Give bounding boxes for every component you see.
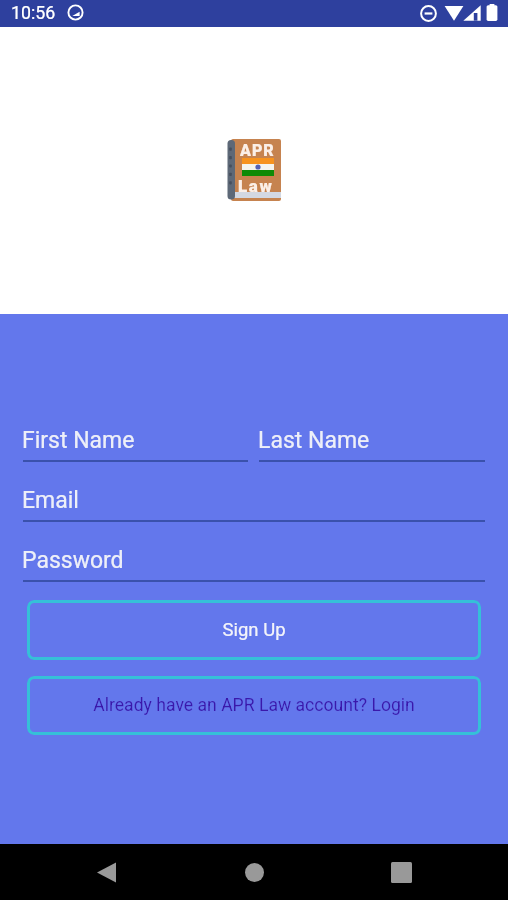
staticText: Last Name [258,427,370,454]
staticText: First Name [22,427,135,454]
button[interactable]: First Name [22,415,248,462]
staticText: Law [238,176,274,196]
button[interactable]: Back [76,852,136,893]
other: Battery [486,4,498,22]
staticText: Already have an APR Law account? Login [93,695,415,716]
button[interactable]: Home [224,852,284,893]
other: Screen capture active [67,4,84,21]
button[interactable]: Already have an APR Law account? Login [27,676,481,735]
other: Wi-Fi [444,5,464,21]
staticText: APR [240,141,275,160]
staticText: Password [22,547,124,574]
other: Do not disturb [420,5,437,22]
other: Mobile signal [463,5,481,21]
button[interactable]: Sign Up [27,600,481,660]
staticText: Email [22,487,79,514]
other: APR Law logo [228,139,282,203]
staticText: Sign Up [222,619,286,641]
button[interactable]: Recent apps [371,852,431,893]
button[interactable]: Password [22,535,485,582]
button[interactable]: Email [22,475,485,522]
button[interactable]: Last Name [258,415,485,462]
staticText: 10:56 [11,2,56,23]
